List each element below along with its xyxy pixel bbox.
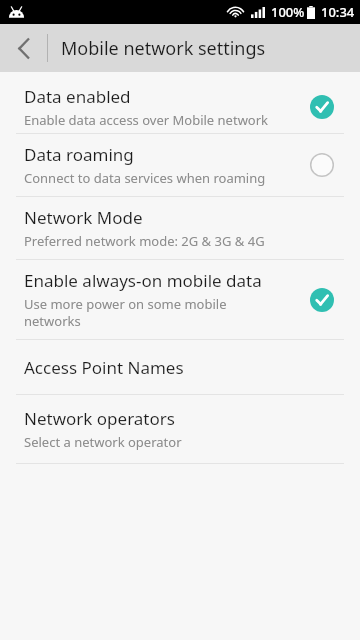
button[interactable]: Enabled, checked — [300, 85, 344, 129]
button[interactable]: Enable always-on mobile data — [0, 260, 360, 339]
staticText: Enable data access over Mobile network — [24, 111, 269, 129]
staticText: 100% — [271, 3, 305, 21]
staticText: Connect to data services when roaming — [24, 169, 266, 187]
button[interactable]: Network Mode — [0, 197, 360, 259]
staticText: Network Mode — [24, 206, 143, 229]
staticText: Mobile network settings — [61, 36, 266, 61]
staticText: Access Point Names — [24, 356, 184, 379]
staticText: Enable always-on mobile data — [24, 269, 262, 292]
staticText: Use more power on some mobile networks — [24, 295, 227, 330]
button[interactable]: Access Point Names — [0, 340, 360, 394]
button[interactable]: Network operators — [0, 395, 360, 463]
button[interactable]: Enabled, checked — [300, 278, 344, 322]
button[interactable]: Data roaming — [0, 134, 360, 196]
button[interactable]: Disabled, unchecked — [300, 143, 344, 187]
staticText: 10:34 — [321, 3, 355, 21]
staticText: Preferred network mode: 2G & 3G & 4G — [24, 232, 265, 250]
staticText: Data roaming — [24, 143, 134, 166]
staticText: Data enabled — [24, 85, 131, 108]
staticText: Select a network operator — [24, 433, 182, 451]
button[interactable]: Back — [0, 24, 47, 72]
staticText: Network operators — [24, 407, 175, 430]
button[interactable]: Data enabled — [0, 80, 360, 133]
